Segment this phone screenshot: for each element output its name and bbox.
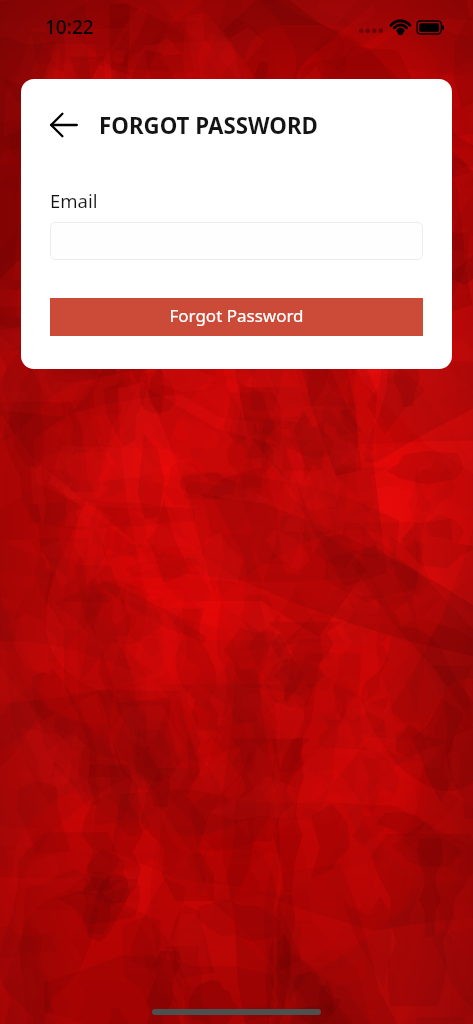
button[interactable] — [50, 222, 423, 260]
staticText: Email — [50, 188, 98, 213]
button[interactable]: Back — [50, 108, 84, 142]
staticText: Forgot Password — [169, 304, 304, 327]
staticText: FORGOT PASSWORD — [99, 110, 318, 140]
staticText: 10:22 — [45, 14, 94, 40]
button[interactable]: Forgot Password — [50, 298, 423, 336]
